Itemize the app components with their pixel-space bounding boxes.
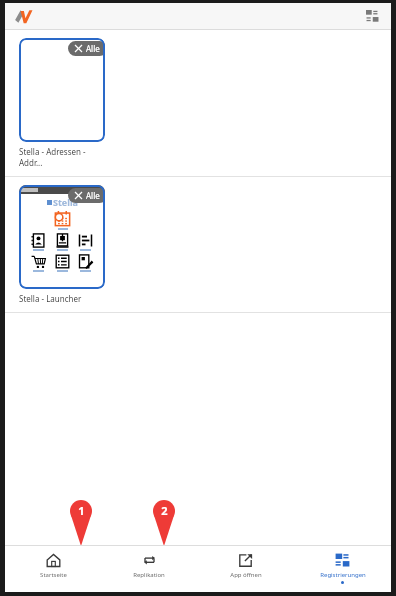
button[interactable]: Alle [5, 30, 391, 176]
button[interactable]: App öffnen [197, 546, 294, 592]
staticText: 1 [78, 503, 85, 518]
other: App logo [14, 7, 36, 25]
button[interactable]: Layout options [361, 5, 383, 27]
button[interactable]: Alle [68, 188, 105, 203]
button[interactable]: Alle [68, 41, 105, 56]
button[interactable]: Replikation [101, 546, 197, 592]
staticText: Alle [86, 43, 100, 54]
staticText: Stella [53, 196, 78, 208]
staticText: Stella - Launcher [19, 293, 111, 304]
button[interactable]: Startseite [5, 546, 101, 592]
staticText: Startseite [40, 571, 67, 579]
button[interactable]: Registrierungen [294, 546, 391, 592]
staticText: 2 [161, 503, 168, 518]
staticText: App öffnen [230, 571, 262, 579]
staticText: Replikation [133, 571, 165, 579]
staticText: Alle [86, 190, 100, 201]
staticText: Stella - Adressen - Addr... [19, 146, 111, 168]
staticText: Registrierungen [320, 571, 366, 579]
button[interactable]: Stella [5, 177, 391, 312]
